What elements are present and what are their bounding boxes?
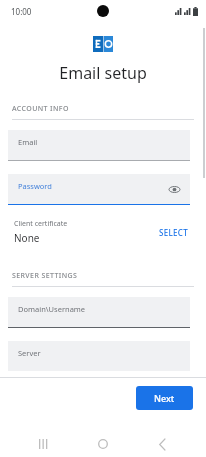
staticText: Domain\Username: [18, 304, 86, 314]
button[interactable]: Home: [88, 431, 118, 457]
button[interactable]: Next: [136, 386, 193, 410]
staticText: Email: [18, 137, 38, 147]
staticText: 10:00: [11, 6, 32, 17]
button[interactable]: Client certificate: [14, 219, 192, 245]
staticText: SELECT: [159, 227, 188, 238]
staticText: Client certificate: [14, 219, 68, 229]
button[interactable]: Email: [8, 130, 190, 161]
staticText: Next: [154, 392, 175, 404]
staticText: SERVER SETTINGS: [12, 271, 78, 281]
staticText: Password: [18, 181, 52, 191]
staticText: Email setup: [0, 62, 206, 84]
button[interactable]: Recent apps: [29, 431, 59, 457]
staticText: Server: [18, 348, 41, 358]
button[interactable]: Back: [147, 431, 177, 457]
button[interactable]: Domain\Username: [8, 297, 190, 328]
button[interactable]: SELECT: [155, 223, 192, 242]
button[interactable]: Show password: [166, 181, 182, 197]
button[interactable]: Server: [8, 341, 190, 372]
button[interactable]: Password: [8, 174, 190, 205]
staticText: ACCOUNT INFO: [12, 104, 69, 114]
staticText: None: [14, 231, 40, 245]
